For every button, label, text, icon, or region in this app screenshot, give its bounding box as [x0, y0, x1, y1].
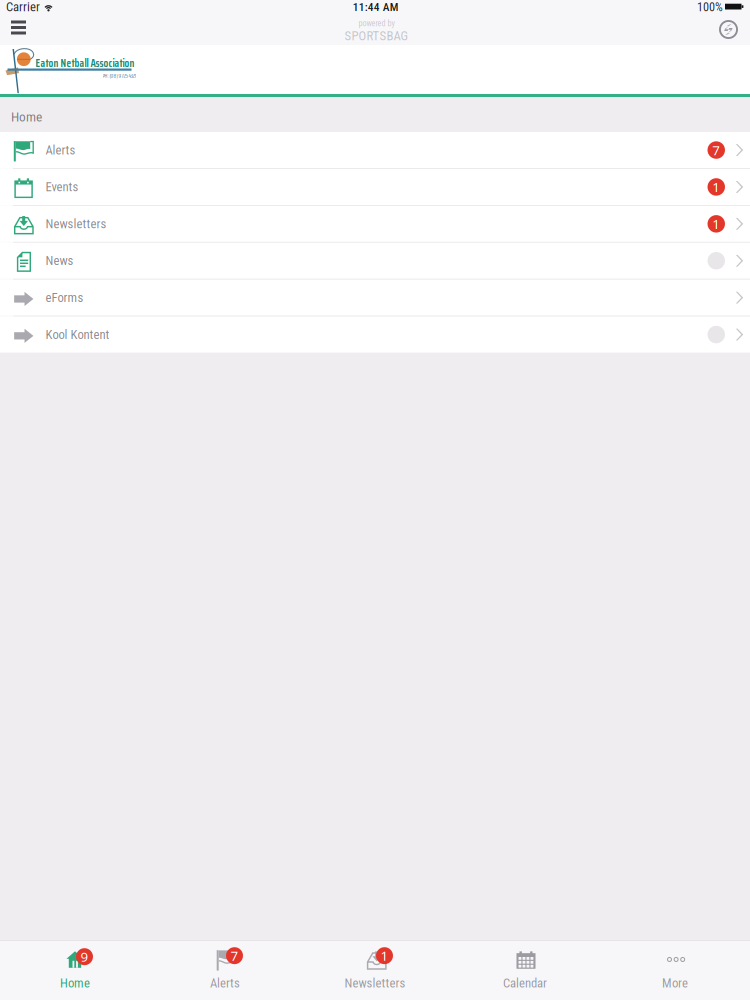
staticText: Alerts	[210, 976, 240, 990]
staticText: News	[45, 253, 73, 268]
button[interactable]: Kool Kontent	[0, 316, 750, 353]
staticText: Newsletters	[344, 976, 405, 990]
staticText: Home	[60, 976, 90, 990]
staticText: 9	[80, 948, 88, 965]
button[interactable]: Calendar	[450, 941, 600, 999]
staticText: Alerts	[45, 143, 75, 157]
staticText: eForms	[45, 290, 83, 305]
button[interactable]: More	[600, 941, 750, 999]
staticText: 1	[712, 178, 720, 196]
staticText: 7	[230, 947, 238, 964]
button[interactable]: eForms	[0, 280, 750, 316]
staticText: Events	[45, 179, 78, 194]
staticText: Eaton Netball Association	[35, 55, 134, 72]
staticText: 1	[380, 947, 388, 964]
button[interactable]: News	[0, 243, 750, 279]
button[interactable]: 9	[0, 941, 150, 999]
staticText: Calendar	[503, 976, 547, 990]
button[interactable]: 7	[150, 941, 300, 999]
button[interactable]: Sportsbag	[713, 14, 744, 45]
staticText: SPORTSBAG	[344, 28, 408, 43]
staticText: Newsletters	[45, 216, 106, 231]
staticText: Kool Kontent	[45, 327, 109, 342]
button[interactable]: Events	[0, 169, 750, 205]
staticText: Home	[11, 109, 42, 125]
staticText: Carrier	[6, 0, 40, 14]
staticText: 7	[712, 141, 720, 159]
staticText: powered by	[358, 19, 394, 28]
button[interactable]: Alerts	[0, 132, 750, 168]
staticText: PH: (08) 9725 4321	[102, 72, 135, 80]
button[interactable]: 1	[300, 941, 450, 999]
button[interactable]: Menu	[0, 14, 36, 45]
staticText: More	[662, 976, 688, 990]
staticText: 11:44 AM	[353, 0, 399, 14]
button[interactable]: Newsletters	[0, 206, 750, 242]
staticText: 100%	[697, 0, 723, 14]
staticText: 1	[712, 215, 720, 233]
